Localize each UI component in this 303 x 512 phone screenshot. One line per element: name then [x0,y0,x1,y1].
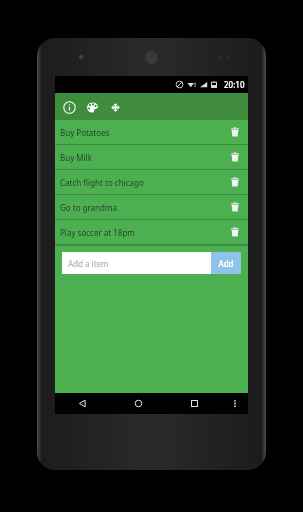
button[interactable]: Buy Potatoes [55,120,248,144]
button[interactable]: Add a item [62,252,211,274]
button[interactable]: Delete Buy Milk [227,149,243,165]
button[interactable]: Reorder items [105,97,125,117]
button[interactable]: Delete Buy Potatoes [227,124,243,140]
staticText: 20:10 [224,79,245,90]
button[interactable]: Change theme colour [82,97,102,117]
staticText: Add a item [68,258,109,269]
button[interactable]: Go to grandma [55,195,248,219]
staticText: Add [218,258,234,269]
button[interactable]: Catch flight to chicago [55,170,248,194]
button[interactable]: Recent apps [166,393,222,414]
button[interactable]: More options [222,393,248,414]
button[interactable]: About [59,97,79,117]
staticText: Play soccer at 18pm [60,227,227,238]
button[interactable]: Home [110,393,166,414]
button[interactable]: Play soccer at 18pm [55,220,248,244]
button[interactable]: Add [211,252,241,274]
button[interactable]: Buy Milk [55,145,248,169]
button[interactable]: Back [55,393,110,414]
button[interactable]: Delete Play soccer at 18pm [227,224,243,240]
staticText: Catch flight to chicago [60,177,227,188]
staticText: Go to grandma [60,202,227,213]
staticText: Buy Milk [60,152,227,163]
button[interactable]: Delete Go to grandma [227,199,243,215]
button[interactable]: Delete Catch flight to chicago [227,174,243,190]
staticText: Buy Potatoes [60,127,227,138]
